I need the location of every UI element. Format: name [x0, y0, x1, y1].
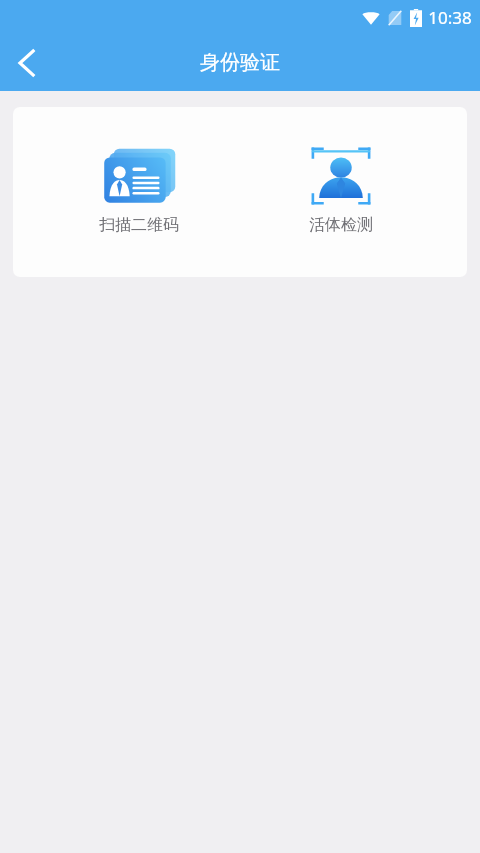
staticText: 扫描二维码	[99, 215, 179, 235]
button[interactable]: Liveness detection	[266, 145, 416, 237]
staticText: 10:38	[428, 6, 472, 29]
staticText: 活体检测	[309, 215, 373, 235]
button[interactable]: Back	[0, 36, 54, 90]
button[interactable]: Scan QR code	[64, 145, 214, 237]
staticText: 身份验证	[200, 50, 280, 75]
